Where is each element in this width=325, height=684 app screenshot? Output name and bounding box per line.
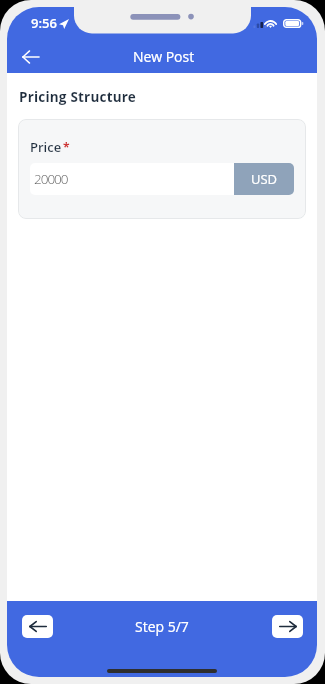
staticText: 20000 xyxy=(34,170,68,188)
button[interactable]: Back xyxy=(13,40,49,73)
staticText: USD xyxy=(251,170,278,188)
staticText: * xyxy=(63,139,70,155)
staticText: New Post xyxy=(133,47,195,66)
staticText: 9:56 xyxy=(31,14,57,32)
button[interactable]: USD xyxy=(234,163,294,195)
staticText: Pricing Structure xyxy=(19,88,137,106)
staticText: Step 5/7 xyxy=(135,617,189,636)
staticText: Price xyxy=(30,138,62,156)
button[interactable]: Previous step xyxy=(22,615,53,638)
button[interactable]: Next step xyxy=(272,615,303,638)
